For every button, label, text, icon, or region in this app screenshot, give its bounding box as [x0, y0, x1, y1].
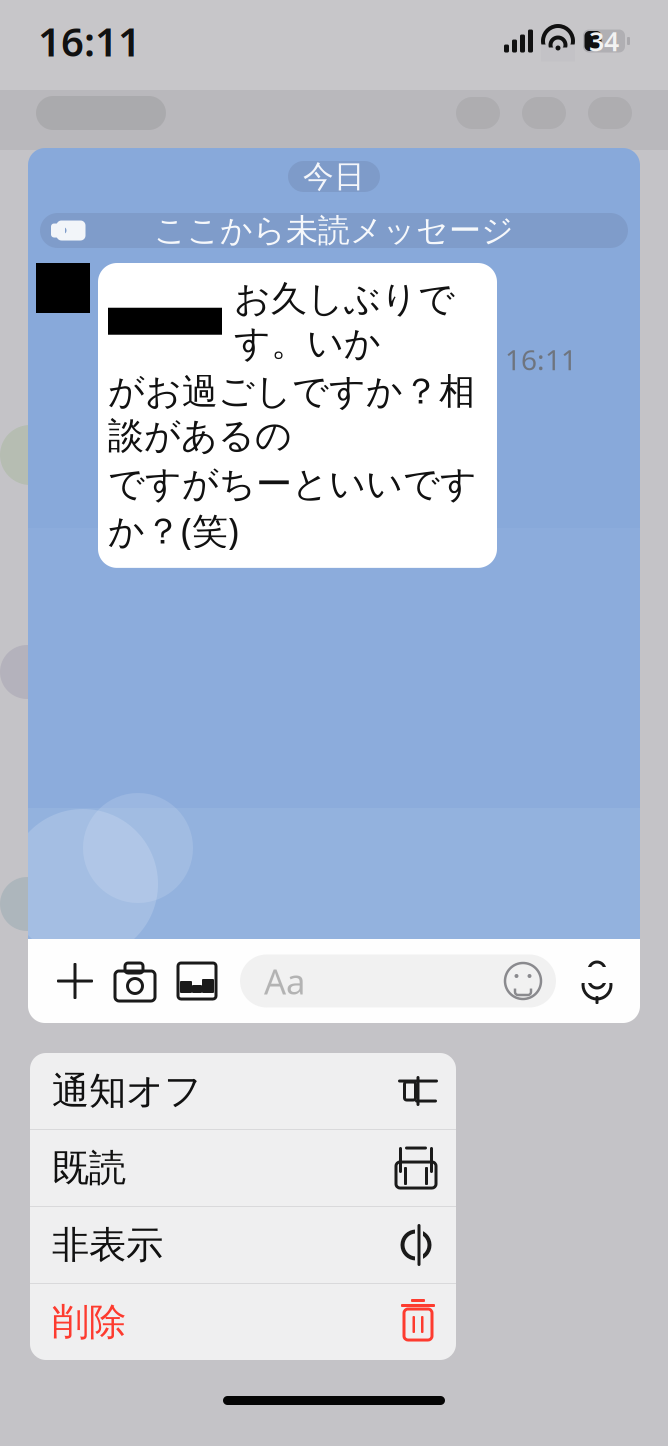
staticText: 16:11	[38, 14, 141, 67]
button[interactable]: 写真	[166, 948, 228, 1014]
staticText: 今日	[303, 158, 365, 195]
staticText: 非表示	[52, 1222, 163, 1268]
staticText: ですがちーといいですか？(笑)	[108, 462, 477, 554]
button[interactable]: 音声メッセージ	[570, 948, 624, 1014]
button[interactable]: 既読	[30, 1130, 456, 1206]
staticText: 既読	[52, 1145, 126, 1191]
button[interactable]: 通知オフ	[30, 1053, 456, 1129]
button[interactable]: その他	[46, 948, 104, 1014]
staticText: 削除	[52, 1299, 126, 1345]
staticText: ここから未読メッセージ	[154, 211, 514, 250]
button[interactable]: 非表示	[30, 1207, 456, 1283]
staticText: 16:11	[505, 341, 577, 378]
button[interactable]: Aa	[240, 954, 556, 1007]
staticText: がお過ごしですか？相談があるの	[108, 369, 475, 458]
staticText: Aa	[264, 958, 305, 1004]
button[interactable]: カメラ	[104, 948, 166, 1014]
staticText: 通知オフ	[52, 1068, 202, 1114]
staticText: お久しぶりです。いか	[234, 277, 455, 365]
button[interactable]: 削除	[30, 1284, 456, 1360]
staticText: 34	[589, 23, 619, 59]
